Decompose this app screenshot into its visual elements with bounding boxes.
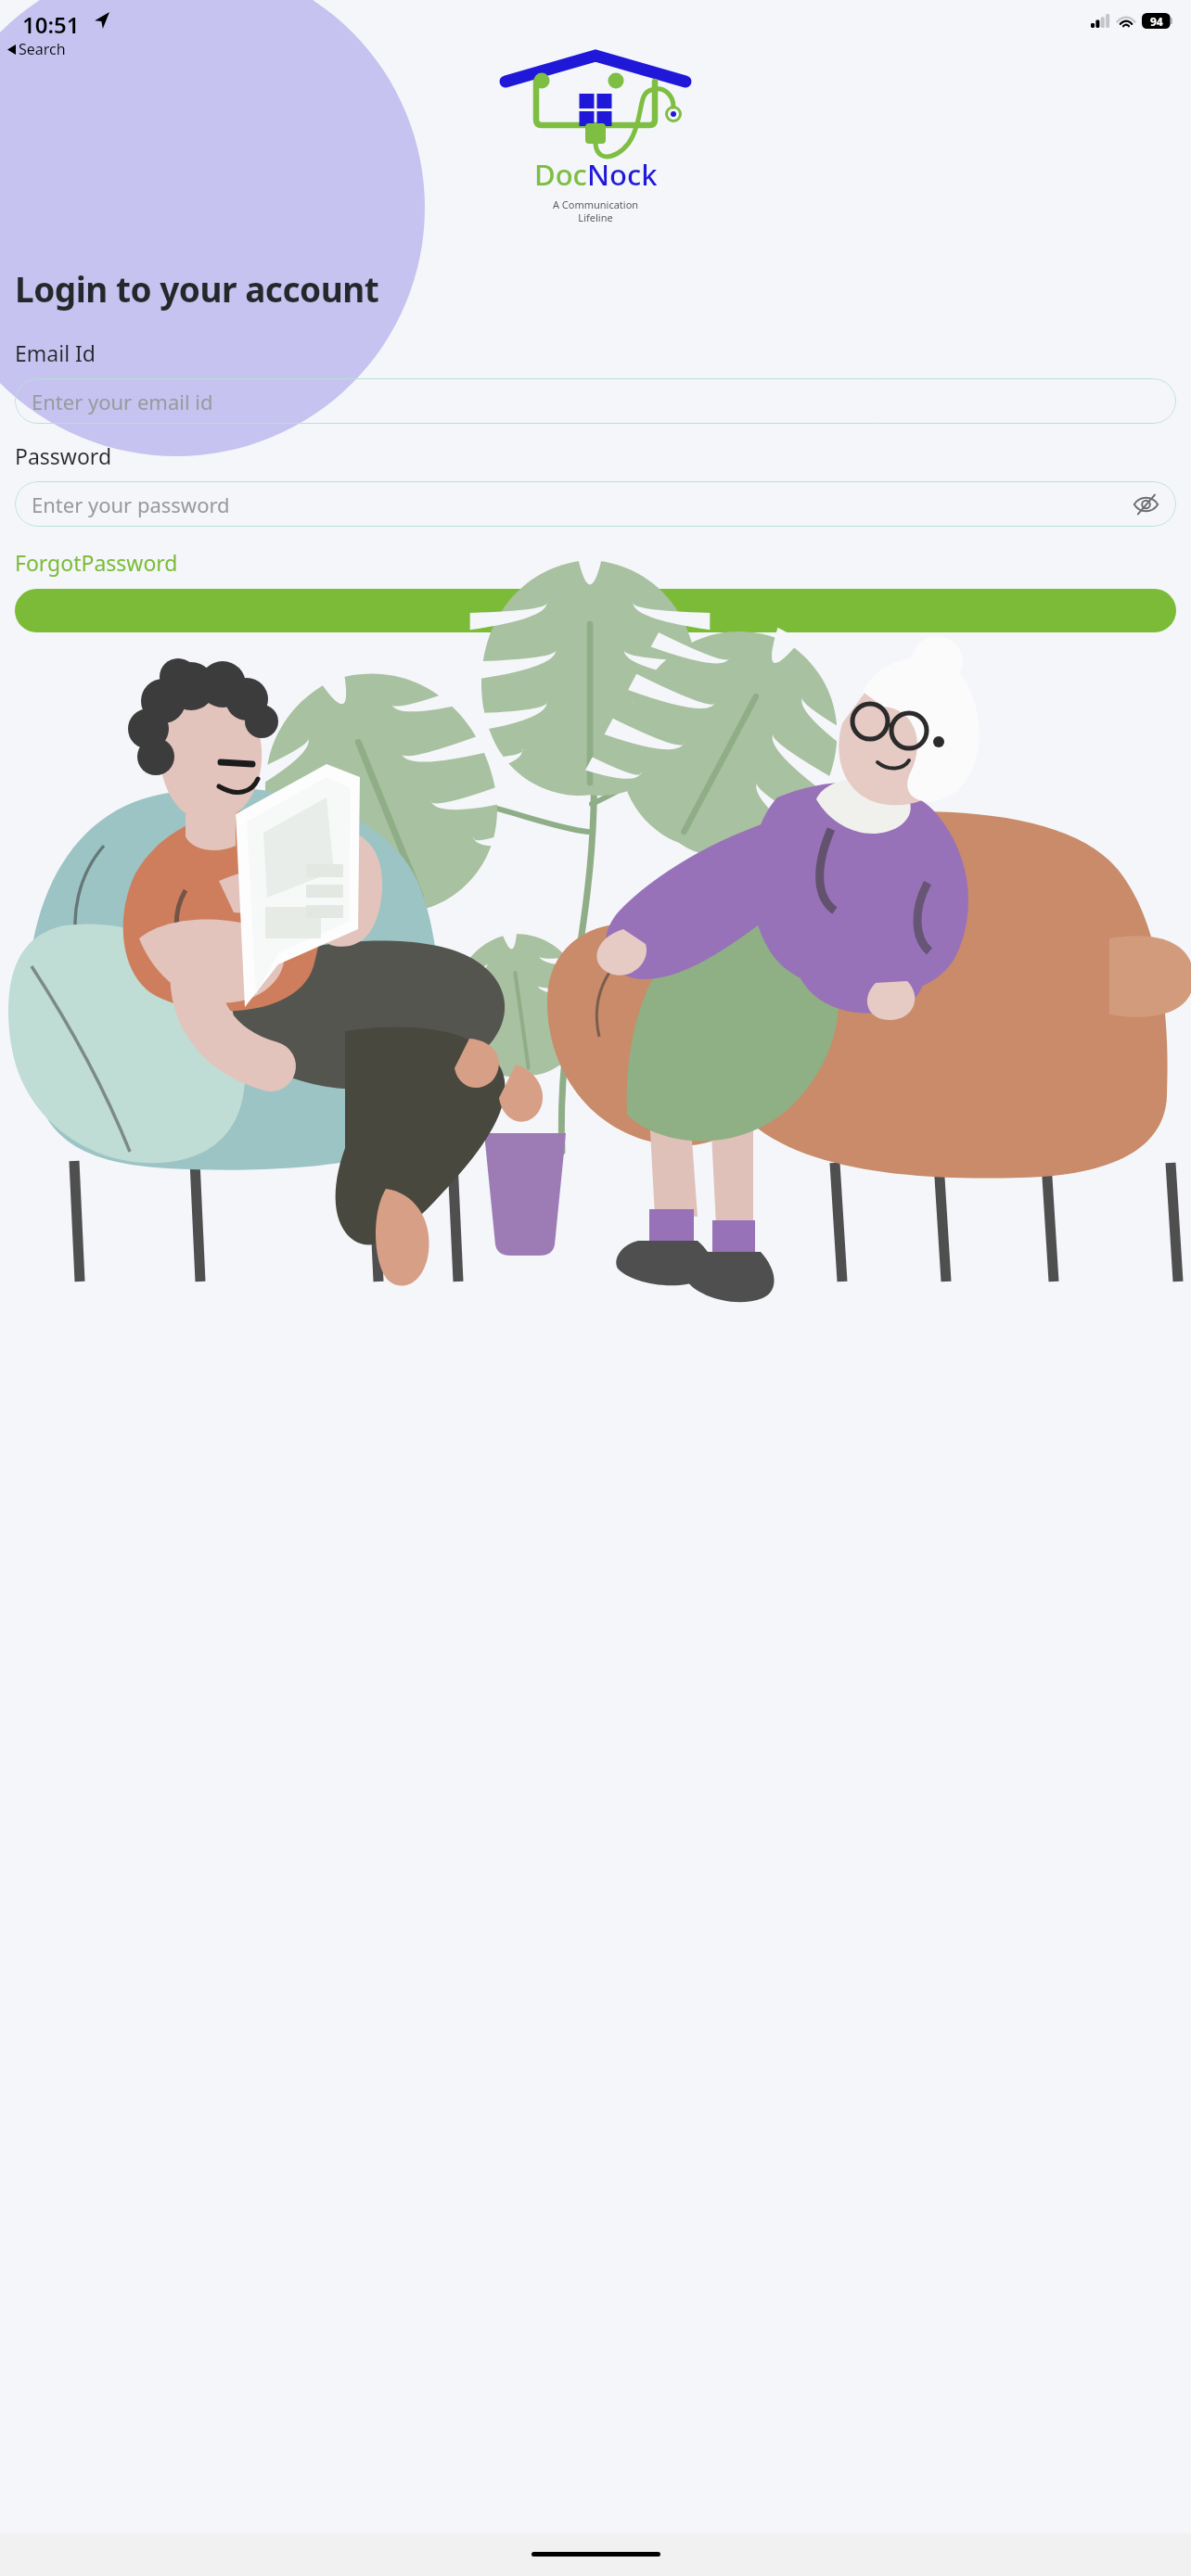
button[interactable]: Login [15,589,1176,632]
staticText: Login to your account [15,265,379,312]
staticText: Enter your password [32,491,230,518]
button[interactable]: Show password [1128,487,1163,522]
button[interactable]: Enter your email id [15,378,1176,424]
staticText: Nock [587,155,658,194]
staticText: A Communication Lifeline [0,198,1191,224]
staticText: ForgotPassword [15,548,178,577]
button[interactable]: Enter your password [15,481,1176,527]
staticText: 10:51 [22,9,80,40]
staticText: Search [19,39,66,59]
staticText: Password [15,441,112,470]
staticText: Enter your email id [32,388,213,415]
staticText: 94 [1150,14,1163,29]
staticText: Email Id [15,338,96,367]
staticText: Doc [534,155,587,194]
button[interactable]: ForgotPassword [15,548,178,577]
